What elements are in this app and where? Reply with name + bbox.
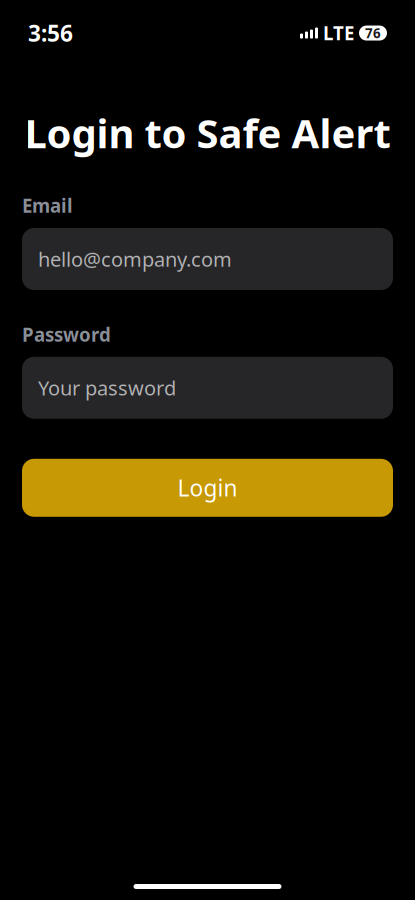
staticText: Email: [22, 193, 73, 218]
staticText: Login to Safe Alert: [24, 106, 390, 159]
staticText: LTE: [323, 21, 354, 45]
staticText: Login: [177, 473, 237, 503]
button[interactable]: Login: [22, 459, 393, 517]
button[interactable]: hello@company.com: [22, 228, 393, 290]
staticText: 76: [365, 24, 381, 42]
staticText: hello@company.com: [38, 246, 232, 272]
staticText: Your password: [38, 374, 176, 401]
staticText: Password: [22, 322, 111, 347]
button[interactable]: Your password: [22, 357, 393, 419]
staticText: 3:56: [28, 18, 73, 48]
